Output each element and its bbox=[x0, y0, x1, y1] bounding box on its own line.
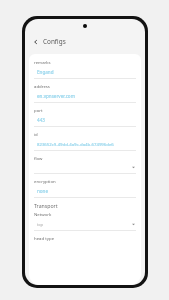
staticText: Configs bbox=[43, 37, 66, 46]
other: Expand Network bbox=[131, 222, 136, 227]
button[interactable]: encryption bbox=[29, 178, 141, 202]
staticText: Network bbox=[34, 211, 52, 217]
button[interactable]: id bbox=[29, 131, 141, 155]
button[interactable]: address bbox=[29, 83, 141, 107]
button[interactable]: head type bbox=[29, 235, 141, 241]
staticText: encryption bbox=[34, 178, 56, 184]
staticText: en.vpnserver.com bbox=[37, 93, 75, 99]
button[interactable]: flow bbox=[29, 155, 141, 178]
button[interactable]: remarks bbox=[29, 59, 141, 83]
staticText: head type bbox=[34, 235, 55, 241]
staticText: id bbox=[34, 131, 38, 137]
staticText: 443 bbox=[37, 117, 45, 123]
staticText: port bbox=[34, 107, 43, 113]
staticText: address bbox=[34, 83, 50, 89]
button[interactable]: port bbox=[29, 107, 141, 131]
button[interactable]: Network bbox=[29, 211, 141, 235]
button[interactable]: Back bbox=[30, 36, 41, 47]
staticText: tcp bbox=[37, 221, 44, 227]
staticText: Transport bbox=[34, 202, 58, 209]
staticText: Engand bbox=[37, 69, 54, 75]
staticText: remarks bbox=[34, 59, 51, 65]
staticText: none bbox=[37, 188, 49, 194]
other: Expand flow bbox=[131, 165, 136, 170]
staticText: flow bbox=[34, 155, 43, 161]
staticText: 823652c9-49dd-4a9c-da4b-674996de6 bbox=[37, 141, 114, 147]
